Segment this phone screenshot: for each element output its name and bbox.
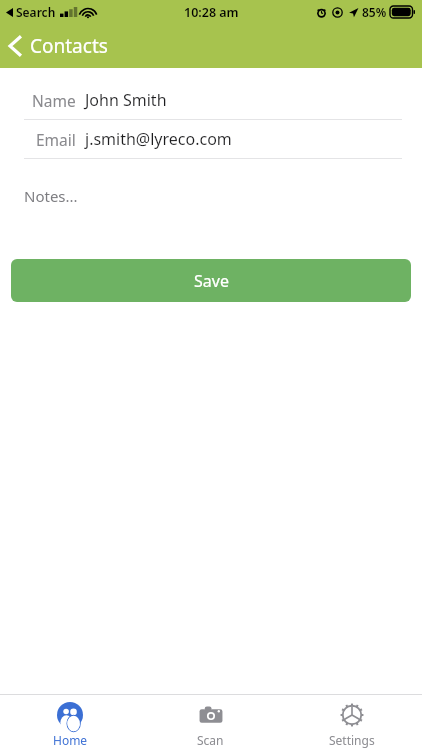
- staticText: Email: [36, 129, 76, 150]
- staticText: Settings: [329, 732, 375, 748]
- staticText: 85%: [362, 4, 387, 20]
- staticText: John Smith: [85, 89, 167, 111]
- button[interactable]: Home: [0, 695, 140, 750]
- staticText: j.smith@lyreco.com: [85, 128, 232, 150]
- staticText: Home: [53, 732, 88, 748]
- staticText: Name: [32, 90, 76, 111]
- button[interactable]: Name: [0, 81, 422, 119]
- staticText: Save: [194, 270, 229, 292]
- staticText: Contacts: [30, 33, 108, 59]
- button[interactable]: Scan: [140, 695, 281, 750]
- staticText: Search: [16, 4, 56, 20]
- button[interactable]: Save: [11, 259, 411, 302]
- staticText: Notes...: [24, 186, 78, 206]
- button[interactable]: Notes...: [24, 175, 422, 217]
- staticText: 10:28 am: [184, 4, 239, 21]
- button[interactable]: Back to Contacts: [9, 24, 108, 68]
- staticText: Scan: [197, 732, 224, 748]
- button[interactable]: Settings: [281, 695, 422, 750]
- button[interactable]: Email: [0, 120, 422, 158]
